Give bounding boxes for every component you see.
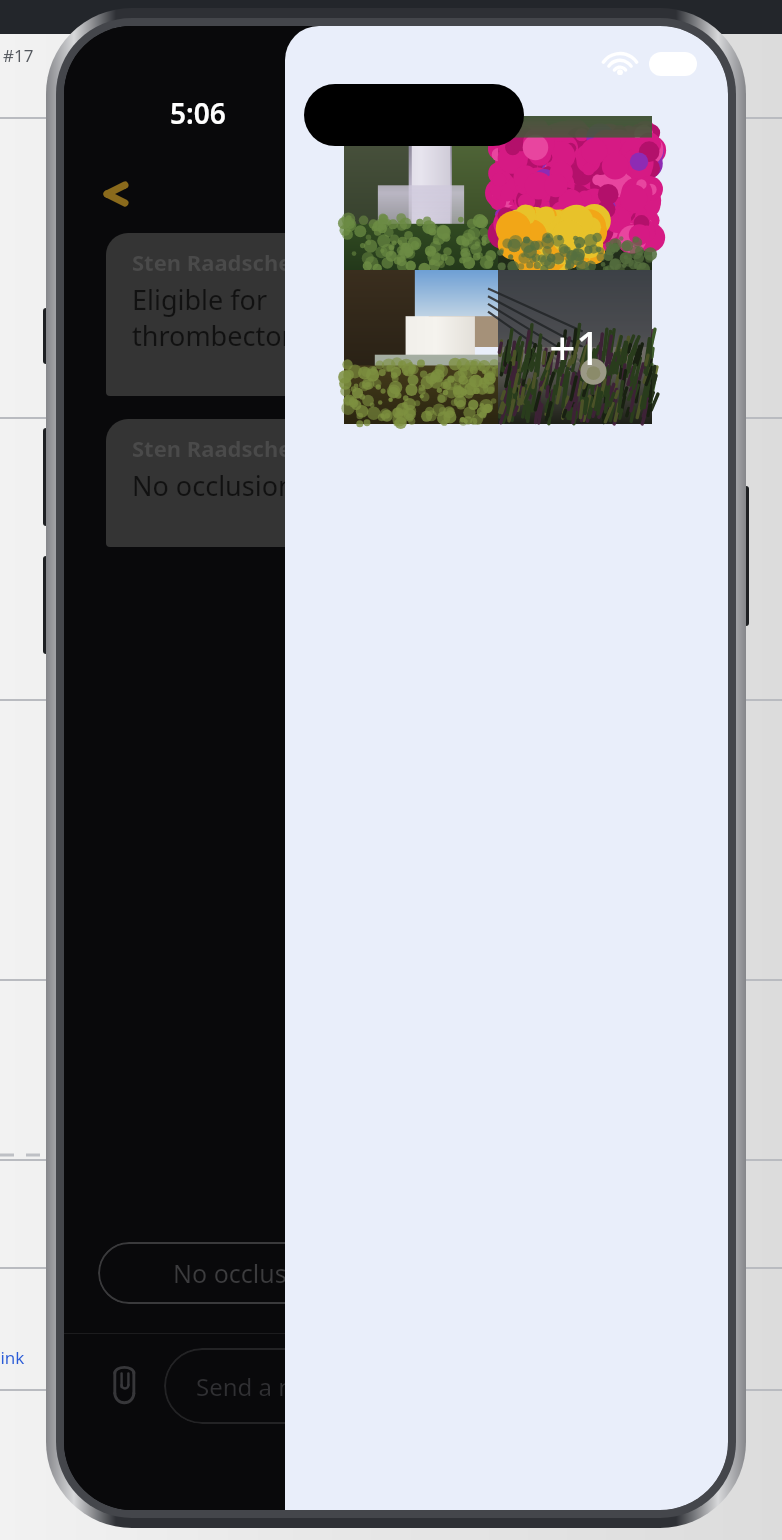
staticText: 5:06 [170,94,226,132]
button[interactable]: Photo attachments [344,116,652,424]
button[interactable]: Sten Raadschelders [106,233,466,396]
button[interactable]: Sten Raadschelders [106,419,466,547]
button[interactable]: Send a message [164,1348,464,1424]
staticText: No occlusion [173,1256,324,1290]
staticText: Sten Raadschelders [132,433,346,463]
button[interactable]: No occlusion [98,1242,398,1304]
staticText: #17 [3,44,34,67]
staticText: Sten Raadschelders [132,247,346,277]
staticText: Eligible for thrombectomy [132,281,321,354]
staticText: +1 [549,316,602,379]
staticText: link [0,1346,25,1369]
staticText: Send a message [196,1370,379,1403]
button[interactable]: Back [86,164,146,224]
staticText: No occlusion [132,467,295,504]
button[interactable]: Attach file [94,1352,156,1414]
